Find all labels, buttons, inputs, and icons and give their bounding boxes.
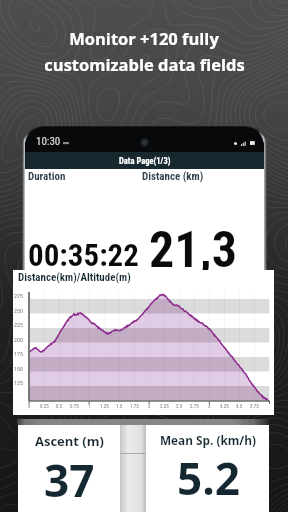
staticText: 0.25: [40, 403, 49, 409]
staticText: 2: [148, 403, 151, 409]
staticText: 1: [88, 403, 91, 409]
staticText: 0: [28, 403, 31, 409]
staticText: 175: [14, 350, 23, 357]
staticText: 275: [14, 292, 23, 299]
staticText: 3.25: [220, 403, 229, 409]
staticText: 00:35:22: [28, 237, 139, 273]
staticText: 125: [14, 379, 23, 386]
other: Alarm: [63, 139, 71, 147]
staticText: 2.5: [176, 403, 183, 409]
staticText: 10:30: [36, 135, 61, 148]
staticText: 2.25: [160, 403, 169, 409]
staticText: 200: [14, 336, 23, 343]
staticText: Data Page(1/3): [119, 156, 171, 166]
staticText: 0.5: [56, 403, 63, 409]
staticText: 225: [14, 321, 23, 328]
staticText: 3.75: [250, 403, 259, 409]
staticText: 250: [14, 307, 23, 314]
staticText: 37: [44, 450, 95, 510]
staticText: 3: [208, 403, 211, 409]
button[interactable]: Mean Sp. (km/h): [146, 425, 269, 512]
staticText: 3.5: [236, 403, 243, 409]
staticText: customizable data fields: [44, 53, 245, 75]
staticText: Distance(km)/Altitude(m): [18, 271, 131, 284]
staticText: 0.75: [70, 403, 79, 409]
staticText: Duration: [28, 170, 66, 183]
staticText: Monitor +120 fully: [69, 27, 219, 49]
staticText: 1.5: [116, 403, 123, 409]
staticText: 1.25: [100, 403, 109, 409]
staticText: Ascent (m): [35, 432, 104, 450]
staticText: 21,3: [149, 221, 238, 280]
staticText: 1.75: [130, 403, 139, 409]
staticText: 2.75: [190, 403, 199, 409]
button[interactable]: Ascent (m): [18, 425, 120, 512]
staticText: Distance (km): [142, 170, 204, 183]
staticText: 5.2: [177, 448, 240, 508]
staticText: 150: [14, 365, 23, 372]
staticText: Mean Sp. (km/h): [160, 432, 256, 448]
